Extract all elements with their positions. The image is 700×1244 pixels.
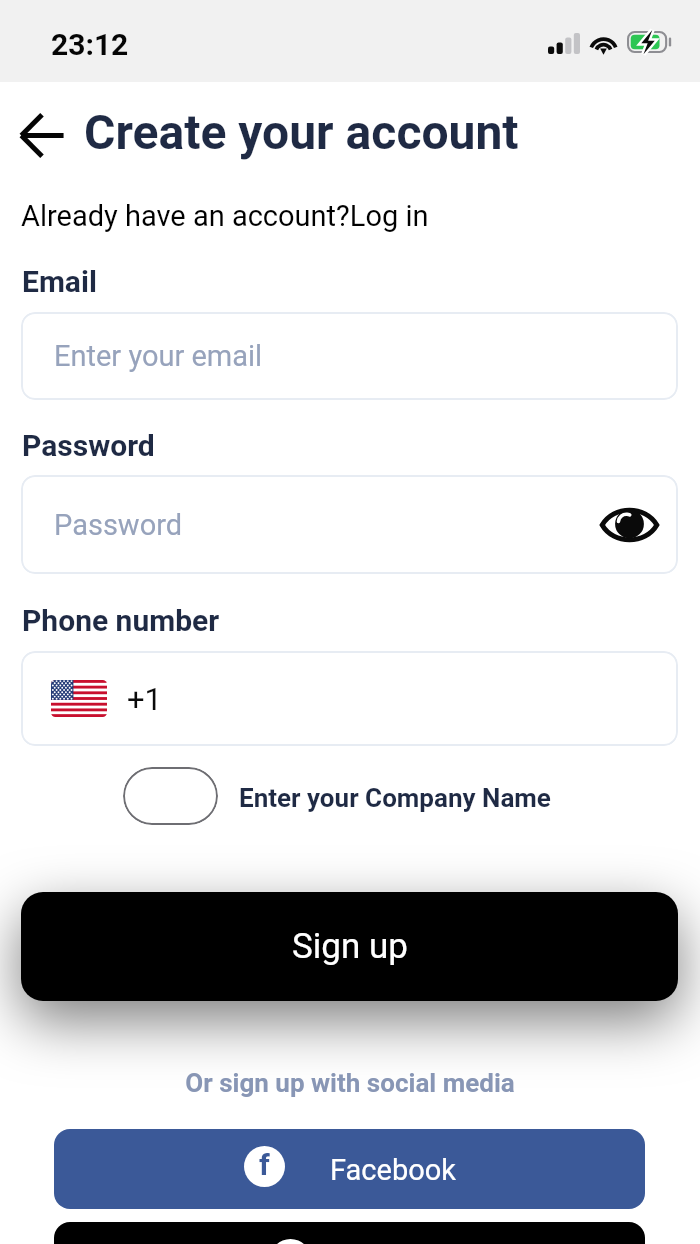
button[interactable]: Enter your email <box>21 312 678 400</box>
staticText: Password <box>22 428 155 463</box>
button[interactable]: Company name toggle <box>123 767 218 825</box>
button[interactable]: Sign up <box>21 892 678 1001</box>
button[interactable]: Back <box>11 104 73 166</box>
staticText: +1 <box>127 681 163 717</box>
button[interactable]: Already have an account?Log in <box>21 199 429 233</box>
staticText: Password <box>54 508 183 542</box>
staticText: f <box>259 1147 270 1182</box>
button[interactable]: Enter your Company Name <box>239 783 551 813</box>
staticText: Facebook <box>330 1153 456 1187</box>
staticText: 23:12 <box>51 27 129 62</box>
staticText: Email <box>22 264 97 299</box>
button[interactable]: f <box>54 1129 645 1209</box>
button[interactable]: Create your account <box>84 104 519 160</box>
staticText: Sign up <box>292 926 408 967</box>
button[interactable]: Show password <box>598 494 660 556</box>
staticText: Phone number <box>22 603 220 638</box>
staticText: Enter your email <box>54 339 263 373</box>
button[interactable]: Password <box>21 475 678 574</box>
button[interactable]: +1 <box>21 651 678 746</box>
staticText: Or sign up with social media <box>0 1068 700 1098</box>
button[interactable]: f <box>54 1222 645 1244</box>
